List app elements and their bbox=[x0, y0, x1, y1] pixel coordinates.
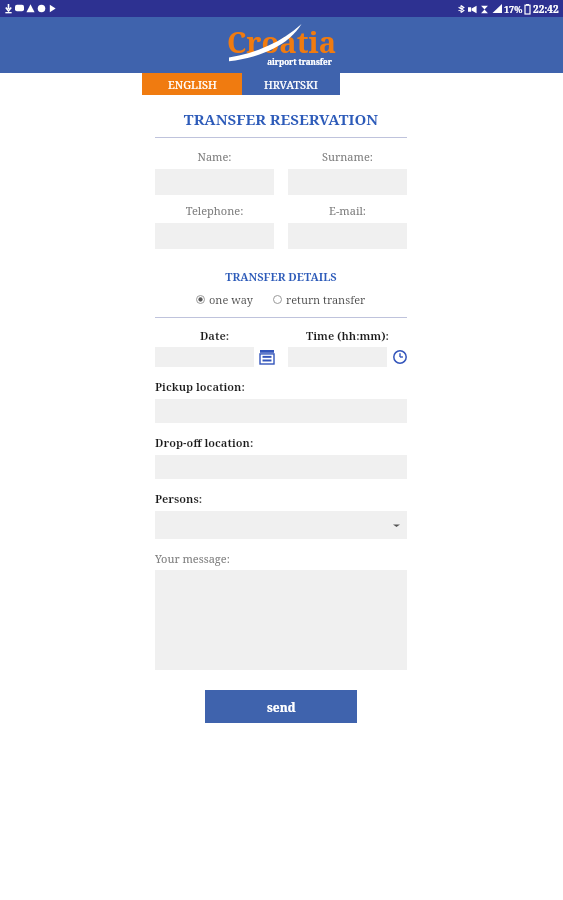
staticText: one way bbox=[209, 292, 253, 307]
button[interactable]: return transfer bbox=[273, 292, 366, 307]
staticText: HRVATSKI bbox=[264, 77, 318, 92]
button[interactable]: send bbox=[205, 690, 357, 723]
staticText: ENGLISH bbox=[168, 77, 217, 92]
button[interactable]: one way bbox=[196, 292, 253, 307]
staticText: Time (hh:mm): bbox=[288, 328, 407, 343]
button[interactable]: HRVATSKI bbox=[242, 73, 340, 95]
staticText: Surname: bbox=[288, 149, 407, 164]
button[interactable]: Pick time bbox=[393, 350, 407, 364]
staticText: Telephone: bbox=[155, 203, 274, 218]
staticText: Date: bbox=[155, 328, 274, 343]
button[interactable]: Pick date bbox=[260, 350, 274, 364]
staticText: Pickup location: bbox=[155, 379, 245, 394]
staticText: Drop-off location: bbox=[155, 435, 254, 450]
staticText: Your message: bbox=[155, 551, 230, 566]
button[interactable]: ENGLISH bbox=[142, 73, 242, 95]
staticText: TRANSFER RESERVATION bbox=[155, 109, 407, 129]
staticText: Persons: bbox=[155, 491, 203, 506]
staticText: airport transfer bbox=[255, 56, 344, 67]
button[interactable] bbox=[155, 511, 407, 539]
staticText: 22:42 bbox=[533, 2, 559, 16]
staticText: TRANSFER DETAILS bbox=[155, 269, 407, 284]
staticText: 17% bbox=[504, 3, 523, 15]
staticText: send bbox=[267, 699, 296, 715]
staticText: Name: bbox=[155, 149, 274, 164]
staticText: return transfer bbox=[286, 292, 366, 307]
staticText: E-mail: bbox=[288, 203, 407, 218]
staticText: Croatia bbox=[219, 22, 344, 61]
